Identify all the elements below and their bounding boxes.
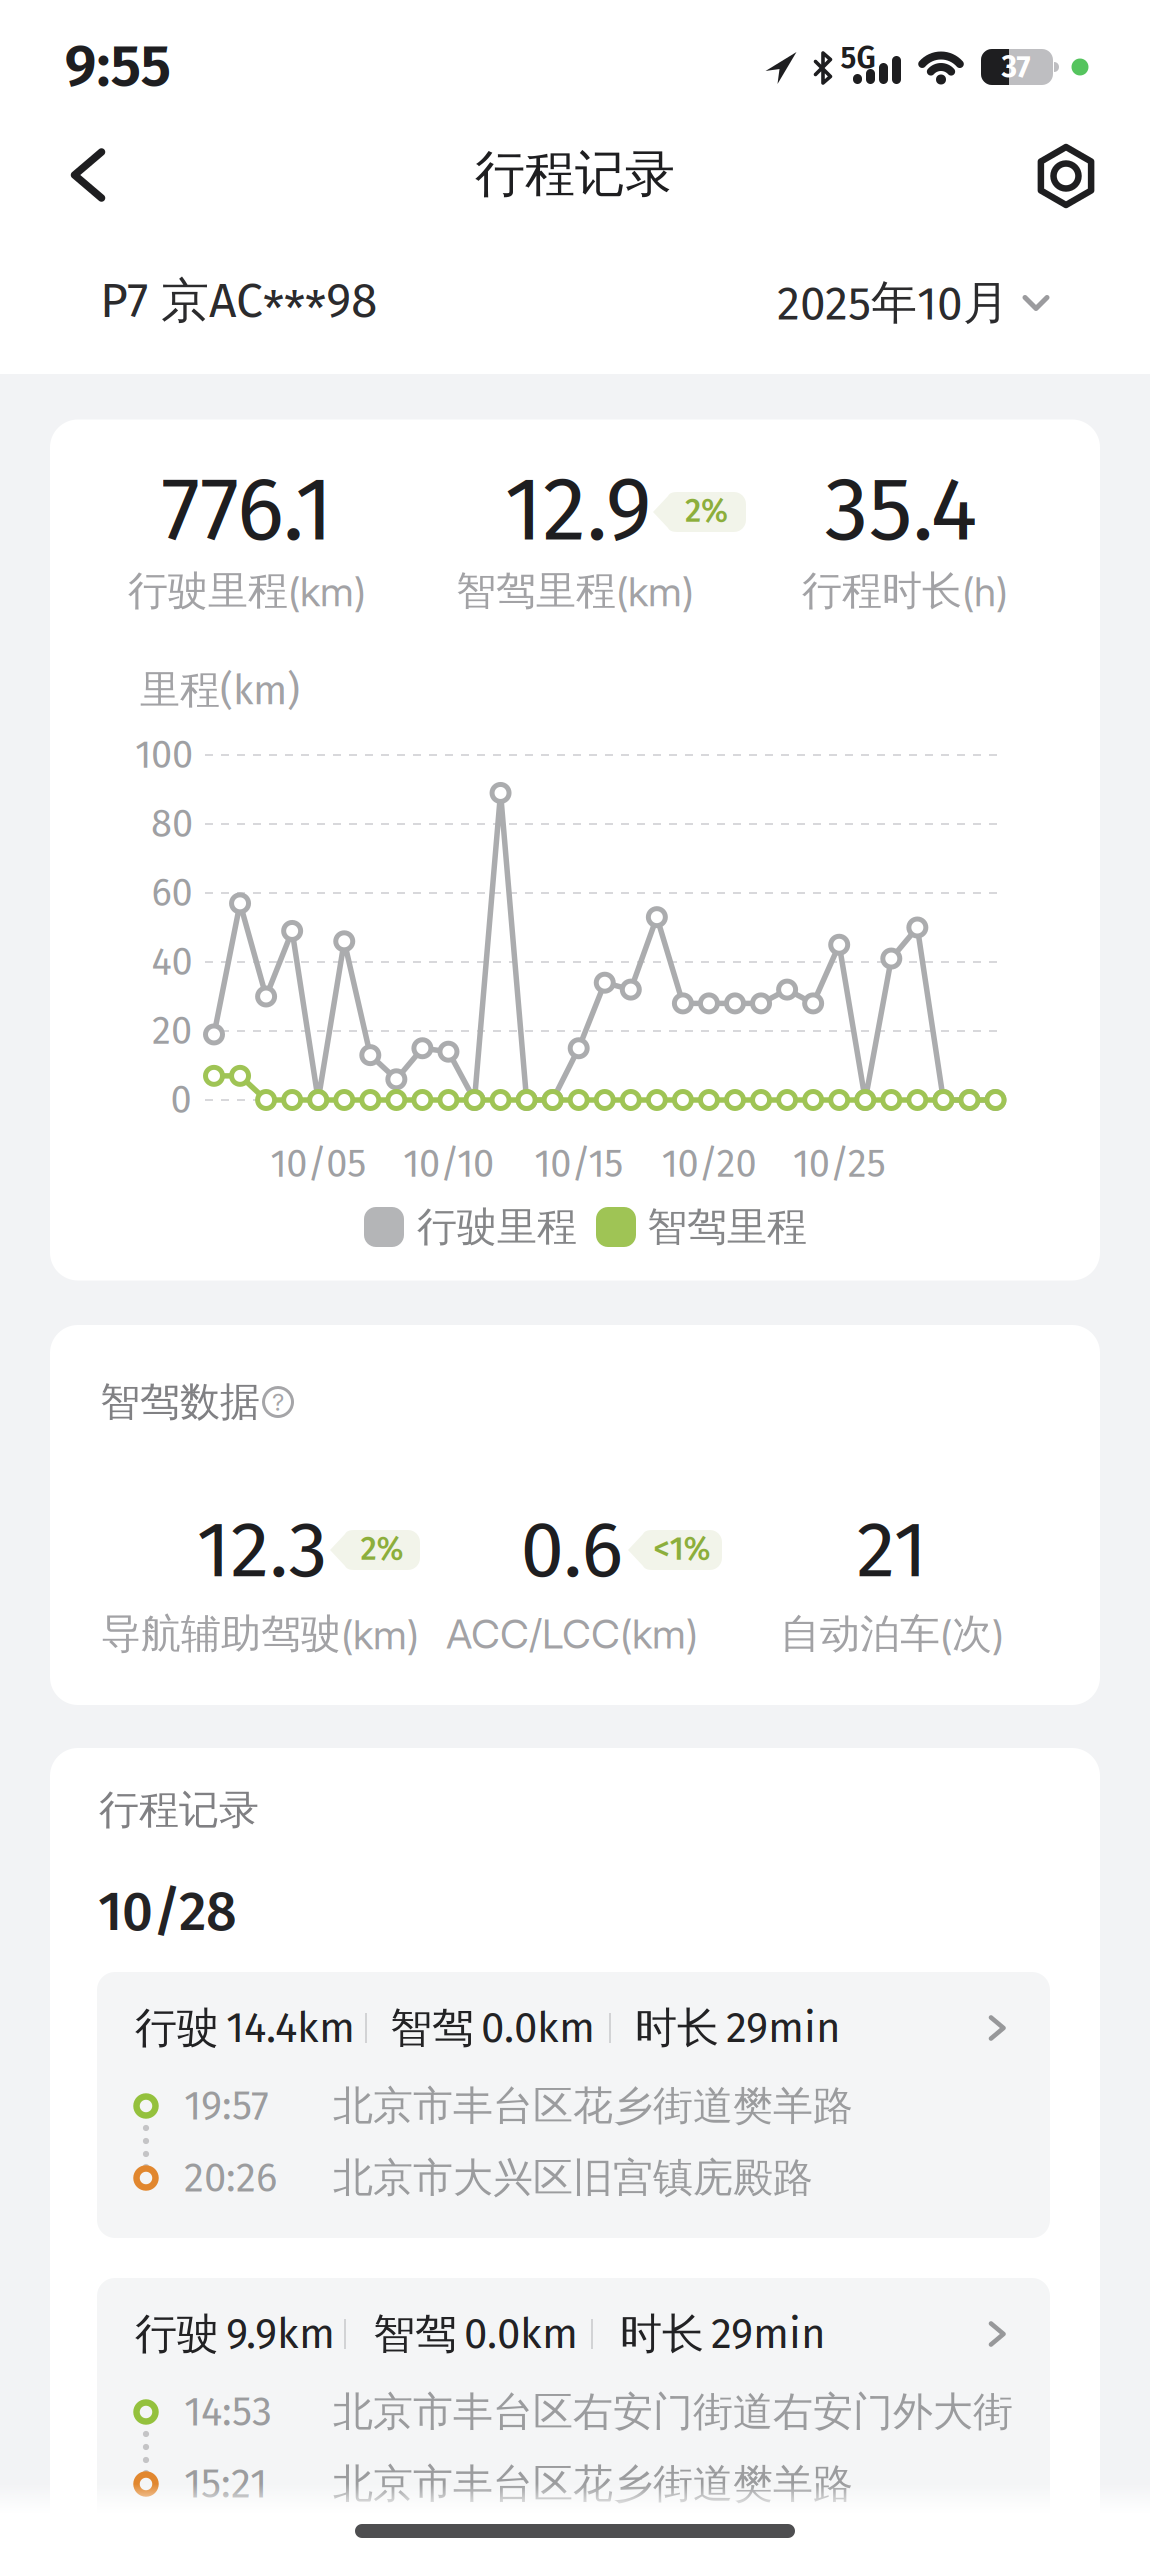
button[interactable]: Help bbox=[262, 1386, 294, 1418]
staticText: 自动泊车(次) bbox=[780, 1609, 1004, 1659]
button[interactable]: Settings bbox=[1033, 143, 1099, 209]
staticText: 导航辅助驾驶(km) bbox=[101, 1609, 419, 1659]
staticText: 12.9 bbox=[504, 457, 651, 563]
staticText: 时长 bbox=[620, 2307, 704, 2360]
staticText: P7 京AC bbox=[100, 271, 263, 331]
staticText: 行驶 bbox=[135, 2001, 219, 2054]
staticText: 行驶里程 bbox=[417, 1202, 577, 1252]
staticText: 100 bbox=[135, 732, 193, 778]
staticText: 20:26 bbox=[184, 2154, 277, 2202]
staticText: 40 bbox=[151, 939, 192, 985]
staticText: 0.6 bbox=[520, 1503, 623, 1597]
button[interactable]: 行驶 bbox=[0, 0, 1150, 2559]
staticText: 智驾里程 bbox=[647, 1202, 807, 1252]
staticText: 10/25 bbox=[793, 1141, 886, 1187]
staticText: 10/28 bbox=[98, 1880, 237, 1944]
staticText: 行程记录 bbox=[475, 142, 675, 205]
button[interactable]: Back bbox=[70, 148, 105, 202]
staticText: 776.1 bbox=[161, 457, 333, 563]
staticText: 60 bbox=[151, 870, 192, 916]
staticText: 37 bbox=[1001, 49, 1030, 85]
staticText: 80 bbox=[151, 801, 193, 847]
staticText: 35.4 bbox=[824, 457, 977, 563]
button[interactable]: 2025年10月 bbox=[777, 274, 1049, 332]
staticText: 14.4km bbox=[226, 2003, 355, 2053]
staticText: *** bbox=[263, 281, 326, 339]
staticText: 9:55 bbox=[64, 31, 171, 101]
staticText: ? bbox=[272, 1387, 284, 1416]
staticText: 北京市丰台区花乡街道樊羊路 bbox=[333, 2081, 853, 2131]
staticText: 智驾 bbox=[373, 2307, 457, 2360]
staticText: 2% bbox=[360, 1530, 403, 1568]
staticText: 9.9km bbox=[226, 2309, 335, 2359]
staticText: 0.0km bbox=[464, 2309, 578, 2359]
staticText: 行驶 bbox=[135, 2307, 219, 2360]
staticText: 北京市大兴区旧宫镇庑殿路 bbox=[333, 2153, 813, 2203]
staticText: 98 bbox=[326, 272, 377, 330]
button[interactable]: 行驶 bbox=[0, 0, 1150, 2559]
staticText: 15:21 bbox=[184, 2460, 267, 2508]
staticText: 北京市丰台区花乡街道樊羊路 bbox=[333, 2459, 853, 2509]
staticText: 10/05 bbox=[270, 1141, 366, 1187]
staticText: 5G bbox=[840, 40, 875, 76]
staticText: ACC/LCC(km) bbox=[446, 1610, 698, 1658]
staticText: 2% bbox=[685, 492, 728, 530]
staticText: 10/20 bbox=[661, 1141, 756, 1187]
staticText: 29min bbox=[726, 2003, 841, 2053]
staticText: 智驾 bbox=[390, 2001, 474, 2054]
staticText: 2025年10月 bbox=[777, 274, 1009, 332]
staticText: 0.0km bbox=[481, 2003, 595, 2053]
staticText: 里程(km) bbox=[140, 665, 300, 715]
staticText: <1% bbox=[653, 1530, 710, 1568]
staticText: 14:53 bbox=[184, 2388, 272, 2436]
staticText: 时长 bbox=[635, 2001, 719, 2054]
staticText: 行程时长(h) bbox=[802, 566, 1008, 616]
staticText: 29min bbox=[711, 2309, 826, 2359]
staticText: 19:57 bbox=[184, 2082, 269, 2130]
staticText: 行程记录 bbox=[99, 1785, 259, 1835]
staticText: 北京市丰台区右安门街道右安门外大街 bbox=[333, 2387, 1013, 2437]
staticText: 21 bbox=[856, 1503, 927, 1597]
staticText: 0 bbox=[170, 1077, 191, 1123]
staticText: 行驶里程(km) bbox=[128, 566, 366, 616]
staticText: 智驾里程(km) bbox=[456, 566, 694, 616]
staticText: 12.3 bbox=[196, 1503, 327, 1597]
staticText: 智驾数据 bbox=[100, 1377, 260, 1427]
staticText: 10/15 bbox=[534, 1141, 623, 1187]
staticText: 20 bbox=[152, 1008, 192, 1054]
staticText: 10/10 bbox=[403, 1141, 494, 1187]
